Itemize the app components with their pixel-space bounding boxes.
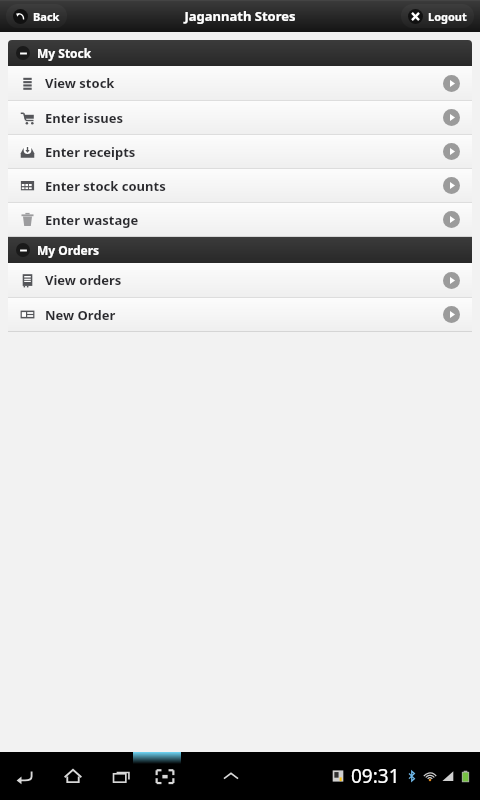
button[interactable]: New Order [8, 298, 472, 331]
staticText: Jagannath Stores [184, 7, 296, 25]
button[interactable]: Back [6, 4, 67, 28]
staticText: Enter stock counts [45, 177, 166, 195]
button[interactable]: Recent apps [106, 761, 136, 791]
staticText: 09:31 [351, 763, 400, 789]
staticText: View stock [45, 74, 115, 92]
staticText: Enter receipts [45, 143, 136, 161]
button[interactable]: View stock [8, 66, 472, 100]
staticText: View orders [45, 271, 122, 289]
staticText: Logout [428, 9, 467, 24]
staticText: My Stock [37, 45, 92, 61]
staticText: My Orders [37, 242, 100, 258]
button[interactable]: Enter issues [8, 101, 472, 134]
button[interactable]: Enter stock counts [8, 169, 472, 202]
button[interactable]: My Orders [8, 237, 472, 263]
button[interactable]: Enter wastage [8, 203, 472, 236]
button[interactable]: Logout [401, 4, 474, 28]
button[interactable]: View orders [8, 263, 472, 297]
button[interactable]: Screenshot [150, 761, 180, 791]
button[interactable]: My Stock [8, 40, 472, 66]
button[interactable]: Enter receipts [8, 135, 472, 168]
staticText: Back [33, 9, 60, 24]
staticText: Enter wastage [45, 211, 139, 229]
button[interactable]: Expand [216, 761, 246, 791]
staticText: New Order [45, 306, 116, 324]
staticText: Enter issues [45, 109, 124, 127]
button[interactable]: Back [10, 761, 40, 791]
button[interactable]: Home [58, 761, 88, 791]
